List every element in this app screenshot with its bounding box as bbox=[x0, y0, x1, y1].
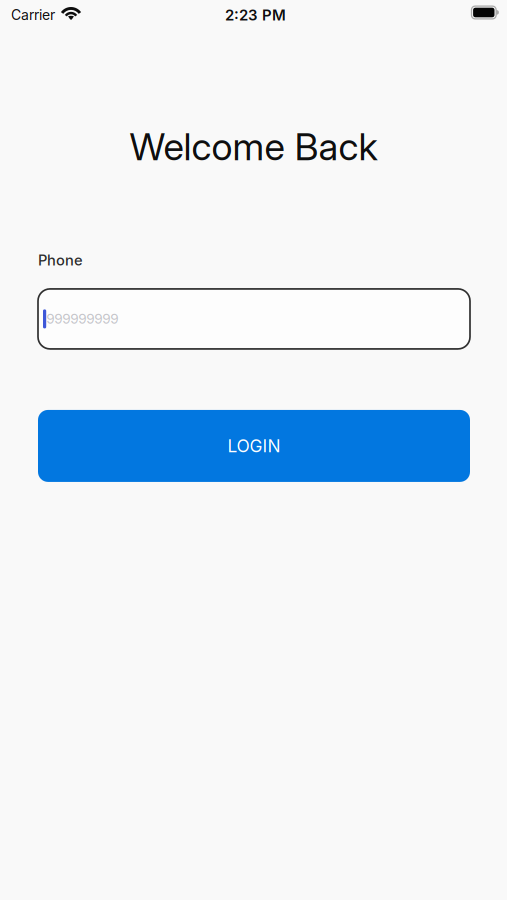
staticText: Phone bbox=[38, 251, 83, 269]
staticText: 2:23 PM bbox=[225, 6, 286, 24]
staticText: Carrier bbox=[11, 6, 55, 23]
staticText: 999999999 bbox=[46, 311, 118, 327]
button[interactable]: LOGIN bbox=[38, 410, 470, 482]
button[interactable]: 999999999 bbox=[38, 289, 470, 349]
staticText: Welcome Back bbox=[129, 124, 377, 169]
staticText: LOGIN bbox=[227, 435, 280, 456]
